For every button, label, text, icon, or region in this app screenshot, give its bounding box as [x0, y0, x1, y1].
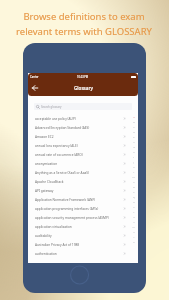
button[interactable]: Advanced Encryption Standard (AES) — [28, 123, 138, 132]
button[interactable]: auditability — [28, 231, 138, 240]
staticText: V — [133, 220, 135, 225]
staticText: API gateway — [35, 189, 54, 193]
staticText: Browse definitions to exam — [23, 10, 145, 23]
button[interactable]: Anything as a Service (XaaS or AaaS) — [28, 168, 138, 177]
staticText: H — [133, 150, 135, 155]
staticText: E — [133, 135, 135, 140]
staticText: C — [133, 125, 135, 130]
staticText: A — [133, 115, 135, 120]
staticText: B — [133, 120, 135, 125]
staticText: application virtualization — [35, 225, 72, 229]
button[interactable]: Application Normative Framework (ANF) — [28, 195, 138, 204]
staticText: Y — [133, 235, 135, 240]
staticText: P — [133, 190, 135, 195]
button[interactable]: application virtualization — [28, 222, 138, 231]
staticText: U — [133, 215, 135, 220]
staticText: Amazon EC2 — [35, 135, 54, 139]
staticText: R — [133, 200, 135, 205]
staticText: authentication — [35, 252, 57, 256]
staticText: S — [133, 205, 135, 210]
staticText: F — [133, 140, 135, 145]
staticText: G — [133, 145, 135, 150]
staticText: N — [133, 180, 135, 185]
button[interactable]: authentication — [28, 249, 138, 258]
button[interactable]: Apache CloudStack — [28, 177, 138, 186]
button[interactable]: annual loss expectancy (ALE) — [28, 141, 138, 150]
staticText: annual loss expectancy (ALE) — [35, 144, 78, 148]
button[interactable]: API gateway — [28, 186, 138, 195]
staticText: Apache CloudStack — [35, 180, 64, 184]
staticText: Australian Privacy Act of 1988 — [35, 243, 80, 247]
staticText: Z — [133, 240, 135, 245]
staticText: Glossary — [74, 85, 93, 91]
staticText: Anything as a Service (XaaS or AaaS) — [35, 171, 89, 175]
staticText: W — [132, 225, 135, 230]
button[interactable]: Amazon EC2 — [28, 132, 138, 141]
staticText: anonymization — [35, 162, 58, 166]
staticText: Carrier — [30, 75, 39, 79]
button[interactable]: application programming interfaces (APIs… — [28, 204, 138, 213]
staticText: Q — [133, 195, 135, 200]
staticText: L — [133, 170, 135, 175]
staticText: K — [133, 165, 135, 170]
staticText: auditability — [35, 234, 52, 238]
staticText: X — [133, 230, 135, 235]
staticText: annual rate of occurrence (ARO) — [35, 153, 83, 157]
staticText: Search glossary — [41, 105, 62, 109]
button[interactable]: Back — [30, 83, 40, 93]
button[interactable]: application security management process … — [28, 213, 138, 222]
staticText: relevant terms with GLOSSARY — [16, 25, 152, 38]
button[interactable]: annual rate of occurrence (ARO) — [28, 150, 138, 159]
staticText: T — [133, 210, 135, 215]
button[interactable]: anonymization — [28, 159, 138, 168]
staticText: Advanced Encryption Standard (AES) — [35, 126, 90, 130]
staticText: M — [132, 175, 135, 180]
staticText: Application Normative Framework (ANF) — [35, 198, 96, 202]
staticText: O — [133, 185, 135, 190]
staticText: application programming interfaces (APIs… — [35, 207, 99, 211]
button[interactable]: acceptable use policy (AUP) — [28, 114, 138, 123]
staticText: 10:23 PM — [77, 75, 89, 79]
staticText: D — [133, 130, 135, 135]
staticText: J — [133, 160, 134, 165]
button[interactable]: Search glossary — [34, 103, 132, 110]
staticText: I — [133, 155, 134, 160]
button[interactable]: Australian Privacy Act of 1988 — [28, 240, 138, 249]
staticText: acceptable use policy (AUP) — [35, 117, 76, 121]
staticText: application security management process … — [35, 216, 109, 220]
